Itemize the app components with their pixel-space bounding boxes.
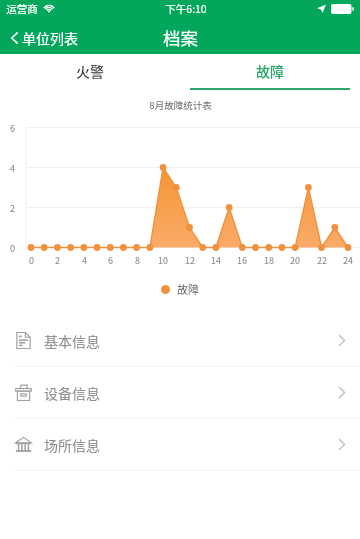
staticText: 火警 — [76, 61, 104, 81]
button[interactable]: 基本信息 — [0, 315, 360, 367]
staticText: 4 — [10, 162, 15, 175]
staticText: 16 — [237, 254, 247, 267]
staticText: 24 — [343, 254, 353, 267]
staticText: 档案 — [163, 25, 198, 50]
staticText: 14 — [211, 254, 221, 267]
staticText: 6 — [10, 122, 15, 135]
button[interactable]: 设备信息 — [0, 367, 360, 419]
staticText: 6 — [108, 254, 113, 267]
button[interactable]: 场所信息 — [0, 419, 360, 471]
staticText: 2 — [10, 202, 15, 215]
button[interactable]: 故障 — [180, 54, 360, 90]
staticText: 运营商 — [6, 1, 38, 16]
staticText: 2 — [55, 254, 60, 267]
staticText: 单位列表 — [22, 28, 78, 48]
button[interactable]: 火警 — [0, 54, 180, 90]
staticText: 下午6:10 — [165, 1, 207, 16]
button[interactable]: 单位列表 — [0, 24, 86, 52]
staticText: 8月故障统计表 — [149, 98, 212, 112]
staticText: 场所信息 — [44, 435, 100, 455]
staticText: 22 — [317, 254, 327, 267]
staticText: 设备信息 — [44, 383, 100, 403]
staticText: 基本信息 — [44, 331, 100, 351]
staticText: 10 — [158, 254, 168, 267]
staticText: 20 — [290, 254, 300, 267]
staticText: 4 — [82, 254, 87, 267]
staticText: 18 — [264, 254, 274, 267]
staticText: 12 — [185, 254, 195, 267]
staticText: 0 — [29, 254, 34, 267]
staticText: 8 — [135, 254, 140, 267]
staticText: 0 — [10, 242, 15, 255]
staticText: 故障 — [177, 281, 199, 297]
staticText: 故障 — [256, 61, 284, 81]
